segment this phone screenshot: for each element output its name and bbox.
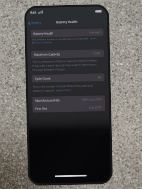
button[interactable]: Cycle Count [31, 73, 105, 83]
staticText: This iPhone battery is performing as exp… [32, 36, 90, 41]
button[interactable]: Manufacture Date [32, 95, 105, 105]
staticText: More in Settings. [32, 40, 53, 44]
staticText: battery's capacity. [33, 88, 56, 93]
staticText: First Use [35, 106, 47, 111]
button[interactable]: First Use [32, 103, 105, 113]
staticText: Maximum Capacity [34, 52, 60, 57]
staticText: 68 [98, 75, 102, 79]
staticText: of usage between charges. [32, 67, 65, 72]
staticText: Battery Health [34, 31, 54, 36]
staticText: Battery Health [56, 20, 77, 24]
staticText: Normal [89, 30, 101, 34]
staticText: Manufacture Date [35, 98, 60, 103]
staticText: July 2024 [89, 105, 102, 109]
staticText: 9:41 [30, 11, 37, 15]
button[interactable]: Maximum Capacity [31, 49, 104, 59]
button[interactable]: Battery Health [30, 28, 104, 38]
staticText: This is the number of times iPhone has u… [33, 83, 94, 89]
staticText: This is a measure of battery capacity re… [32, 58, 97, 64]
staticText: 100% [93, 51, 101, 55]
staticText: February 2024 [82, 97, 102, 102]
staticText: Battery [31, 21, 41, 25]
staticText: Learn [90, 36, 97, 39]
button[interactable]: Battery [27, 20, 42, 26]
staticText: it was new. Lower capacity may result in… [32, 62, 97, 68]
staticText: Cycle Count [35, 76, 52, 81]
staticText: Learn more... [56, 88, 73, 92]
